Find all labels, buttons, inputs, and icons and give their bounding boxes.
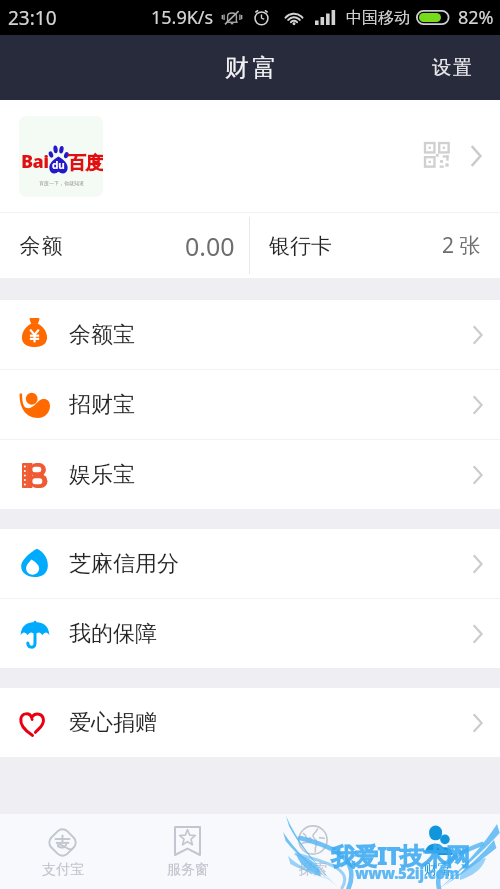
button[interactable]: 支付宝 (0, 814, 125, 889)
button[interactable]: Scan QR code (420, 138, 456, 174)
button[interactable]: Bai (0, 100, 500, 212)
button[interactable]: 芝麻信用分 (0, 529, 500, 598)
staticText: 中国移动 (346, 8, 410, 28)
button[interactable]: 我的保障 (0, 599, 500, 668)
staticText: 设置 (431, 56, 473, 80)
staticText: 我的保障 (69, 620, 157, 648)
staticText: 余额 (19, 233, 63, 259)
button[interactable]: 服务窗 (125, 814, 250, 889)
staticText: 娱乐宝 (69, 461, 135, 489)
button[interactable]: 余额 (0, 213, 249, 278)
staticText: 百度一下，你就知道 (39, 180, 84, 186)
button[interactable]: 财富 (375, 814, 500, 889)
staticText: 银行卡 (269, 233, 332, 259)
button[interactable]: 娱乐宝 (0, 440, 500, 509)
staticText: 服务窗 (167, 861, 209, 879)
button[interactable]: 招财宝 (0, 370, 500, 439)
button[interactable]: 设置 (409, 42, 500, 94)
staticText: 我爱IT技术网 (331, 839, 469, 872)
staticText: 支付宝 (42, 861, 84, 879)
button[interactable]: 余额宝 (0, 300, 500, 369)
staticText: 0.00 (185, 229, 235, 263)
staticText: du (52, 158, 65, 172)
staticText: 招财宝 (69, 391, 135, 419)
staticText: 82% (458, 5, 494, 30)
staticText: 2 张 (442, 231, 481, 260)
button[interactable]: 爱心捐赠 (0, 688, 500, 757)
staticText: 15.9K/s (151, 5, 214, 30)
staticText: Bai (21, 149, 49, 174)
staticText: 芝麻信用分 (69, 550, 179, 578)
staticText: www.52ij.com (355, 863, 460, 883)
staticText: 百度 (68, 152, 103, 175)
staticText: 23:10 (8, 5, 57, 31)
staticText: 财富 (223, 53, 278, 83)
staticText: 探索 (299, 861, 327, 879)
staticText: 爱心捐赠 (69, 709, 157, 737)
staticText: 余额宝 (69, 321, 135, 349)
button[interactable]: 银行卡 (250, 213, 500, 278)
staticText: 财富 (424, 861, 452, 879)
button[interactable]: 探索 (250, 814, 375, 889)
